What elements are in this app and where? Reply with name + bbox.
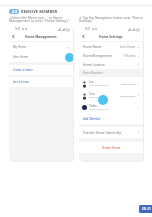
- staticText: 2.3: [12, 9, 17, 14]
- staticText: Transfer Home Ownership: [83, 131, 122, 135]
- staticText: nickname@mail.com: [89, 96, 109, 99]
- staticText: Home Members: [83, 71, 103, 75]
- staticText: Administrator: [120, 94, 136, 97]
- button[interactable]: Back: [11, 34, 16, 39]
- staticText: Room Management: [83, 54, 112, 58]
- staticText: Tom: [89, 92, 95, 96]
- button[interactable]: My Home: [9, 42, 73, 52]
- staticText: Home Location: [83, 63, 106, 67]
- staticText: Home Settings: [99, 35, 123, 39]
- button[interactable]: Tom: [82, 89, 140, 101]
- staticText: Lee's Home: [120, 45, 136, 49]
- button[interactable]: Back: [81, 34, 86, 39]
- button[interactable]: Pedro: [82, 101, 140, 113]
- button[interactable]: Home Location: [79, 60, 143, 69]
- button[interactable]: Add Member: [79, 113, 143, 124]
- staticText: Pedro: [89, 104, 97, 108]
- staticText: Home Name: [83, 45, 102, 49]
- button[interactable]: Delete Home: [79, 142, 143, 153]
- staticText: Home Management: [25, 35, 57, 39]
- staticText: ② Tap the Navigation button over "Home S…: [79, 15, 143, 23]
- button[interactable]: Join a home: [9, 77, 73, 87]
- staticText: Home Owner: [121, 82, 136, 85]
- staticText: nickname@mail.com: [89, 108, 109, 111]
- button[interactable]: Transfer Home Ownership: [79, 127, 143, 138]
- button[interactable]: Lee: [82, 77, 140, 89]
- staticText: Create a home: [13, 68, 33, 72]
- button[interactable]: Home Name: [79, 42, 143, 51]
- staticText: Add Member: [83, 117, 101, 121]
- staticText: Join a home: [13, 80, 30, 84]
- staticText: Delete Home: [102, 146, 121, 150]
- staticText: 9:41: [15, 27, 21, 31]
- staticText: nickname@mail.com: [89, 84, 109, 87]
- staticText: REMOVE MEMBER: [21, 9, 58, 14]
- button[interactable]: Create a home: [9, 65, 73, 75]
- button[interactable]: John Home: [9, 52, 73, 62]
- staticText: My Home: [13, 45, 27, 49]
- staticText: EN-31: [142, 207, 151, 211]
- staticText: Lee: [89, 80, 94, 84]
- staticText: John Home: [13, 55, 29, 59]
- staticText: ①Select the Menu icon ⋮ in Home Manageme…: [9, 15, 71, 23]
- staticText: 5 Rooms: [124, 54, 136, 58]
- button[interactable]: Room Management: [79, 51, 143, 60]
- staticText: 9:41: [85, 27, 91, 31]
